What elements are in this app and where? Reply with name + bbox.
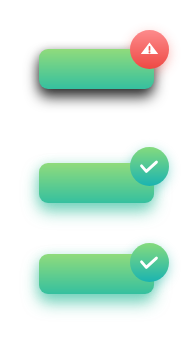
button[interactable] bbox=[39, 163, 154, 203]
button[interactable]: Completed bbox=[130, 147, 169, 186]
button[interactable] bbox=[39, 254, 154, 294]
button[interactable] bbox=[39, 49, 154, 89]
button[interactable]: Completed bbox=[130, 243, 169, 282]
button[interactable]: Error bbox=[130, 30, 169, 69]
